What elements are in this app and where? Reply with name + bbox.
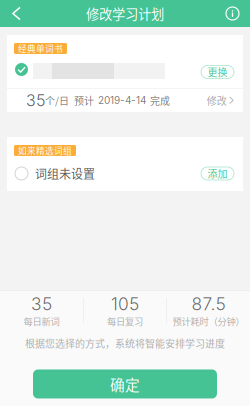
button[interactable]: 说明 — [220, 0, 245, 27]
staticText: 根据您选择的方式，系统将智能安排学习进度 — [25, 336, 225, 350]
staticText: 完成 — [150, 93, 170, 108]
staticText: 预计耗时（分钟） — [172, 314, 244, 328]
staticText: 预计 — [74, 93, 94, 108]
staticText: 修改 — [207, 93, 227, 108]
staticText: 35 — [26, 91, 45, 110]
staticText: 每日复习 — [107, 314, 143, 328]
staticText: 词组未设置 — [35, 165, 95, 182]
staticText: 修改学习计划 — [86, 4, 164, 23]
staticText: 35 — [31, 293, 52, 314]
staticText: 105 — [111, 293, 139, 314]
staticText: 确定 — [110, 373, 140, 395]
button[interactable]: 修改 — [207, 93, 234, 108]
staticText: 每日新词 — [24, 314, 60, 328]
staticText: 2019-4-14 — [98, 94, 146, 106]
staticText: 经典单词书 — [18, 42, 63, 55]
staticText: 如来精选词组 — [18, 144, 72, 157]
button[interactable]: 返回 — [4, 0, 29, 27]
button[interactable]: 确定 — [33, 369, 217, 398]
button[interactable]: 更换 — [201, 65, 234, 78]
button[interactable]: 添加 — [201, 167, 234, 180]
staticText: 个/日 — [45, 93, 69, 108]
staticText: 添加 — [207, 166, 227, 181]
staticText: 87.5 — [191, 293, 225, 314]
staticText: 更换 — [207, 65, 227, 79]
